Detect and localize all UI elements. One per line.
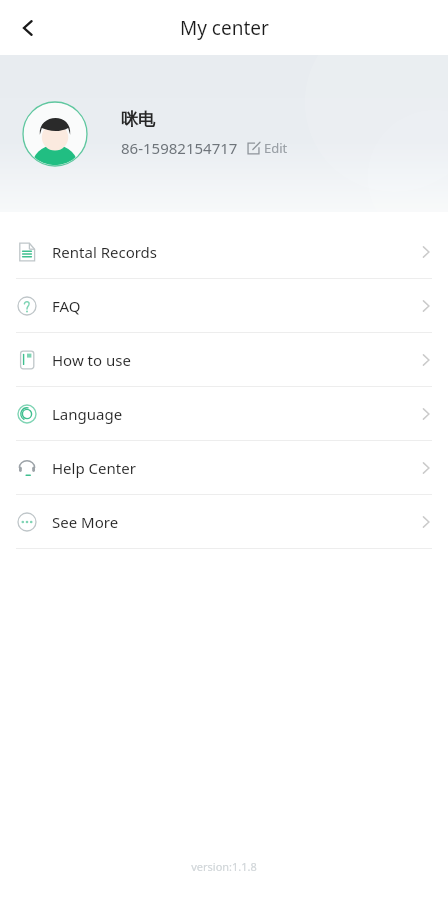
button[interactable]: How to use bbox=[0, 333, 448, 386]
staticText: How to use bbox=[52, 350, 131, 370]
staticText: FAQ bbox=[52, 296, 81, 316]
button[interactable]: Edit bbox=[245, 137, 290, 159]
button[interactable]: Back bbox=[6, 6, 50, 50]
staticText: version:1.1.8 bbox=[0, 859, 448, 874]
staticText: Language bbox=[52, 404, 123, 424]
staticText: My center bbox=[180, 15, 269, 41]
button[interactable]: Help Center bbox=[0, 441, 448, 494]
button[interactable]: FAQ bbox=[0, 279, 448, 332]
staticText: 咪电 bbox=[121, 109, 155, 130]
button[interactable]: Language bbox=[0, 387, 448, 440]
button[interactable]: See More bbox=[0, 495, 448, 548]
staticText: 86-15982154717 bbox=[121, 138, 238, 158]
staticText: Help Center bbox=[52, 458, 136, 478]
staticText: Rental Records bbox=[52, 242, 158, 262]
button[interactable]: Rental Records bbox=[0, 225, 448, 278]
staticText: See More bbox=[52, 512, 119, 532]
staticText: Edit bbox=[264, 139, 288, 157]
